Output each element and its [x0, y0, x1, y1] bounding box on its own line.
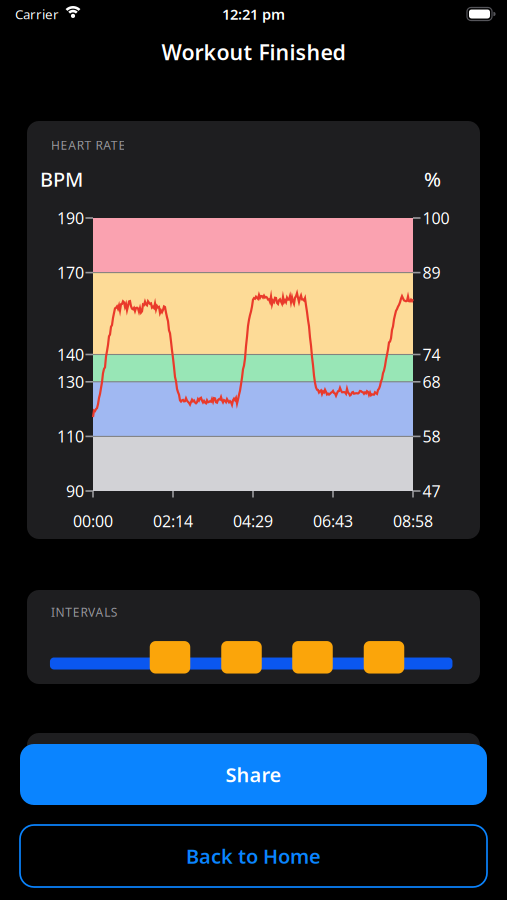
- button[interactable]: Share: [20, 744, 487, 805]
- staticText: 06:43: [313, 510, 353, 532]
- staticText: HEART RATE: [51, 137, 125, 153]
- staticText: BPM: [40, 166, 83, 192]
- staticText: INTERVALS: [51, 604, 118, 620]
- staticText: 89: [422, 262, 440, 283]
- staticText: 12:21 pm: [222, 4, 285, 24]
- staticText: Carrier: [15, 5, 59, 23]
- staticText: Share: [225, 761, 281, 788]
- staticText: %: [424, 166, 441, 192]
- staticText: 140: [57, 344, 84, 365]
- staticText: 100: [422, 207, 449, 229]
- staticText: 190: [57, 207, 84, 229]
- staticText: Workout Finished: [161, 38, 345, 66]
- button[interactable]: Back to Home: [20, 825, 487, 887]
- staticText: 130: [57, 371, 84, 392]
- staticText: 74: [422, 344, 440, 365]
- staticText: 04:29: [233, 510, 273, 532]
- staticText: 47: [422, 480, 440, 502]
- staticText: 08:58: [393, 510, 433, 532]
- staticText: 58: [422, 426, 440, 447]
- staticText: 00:00: [73, 510, 113, 532]
- staticText: 170: [57, 262, 84, 283]
- staticText: 110: [57, 426, 84, 447]
- staticText: 02:14: [153, 510, 193, 532]
- staticText: 90: [66, 480, 84, 502]
- staticText: Back to Home: [186, 843, 321, 869]
- staticText: 68: [422, 371, 440, 392]
